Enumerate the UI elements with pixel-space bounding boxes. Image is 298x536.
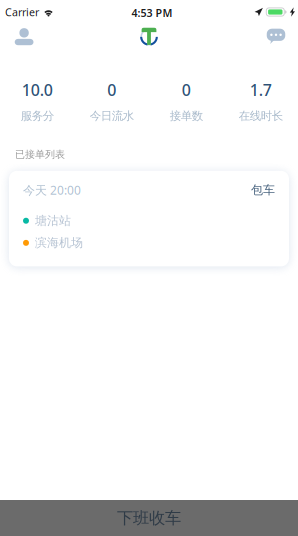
staticText: 1.7 <box>250 79 272 101</box>
staticText: 包车 <box>251 182 275 197</box>
staticText: 今日流水 <box>90 109 134 123</box>
staticText: 0 <box>107 79 116 101</box>
staticText: 塘沽站 <box>35 213 71 228</box>
staticText: 已接单列表 <box>15 148 65 161</box>
staticText: 接单数 <box>170 109 203 123</box>
staticText: 0 <box>182 79 191 101</box>
staticText: 下班收车 <box>117 508 181 528</box>
staticText: 服务分 <box>21 109 54 123</box>
staticText: 在线时长 <box>239 109 283 123</box>
staticText: 滨海机场 <box>35 235 83 250</box>
staticText: 10.0 <box>22 79 53 101</box>
staticText: 4:53 PM <box>131 5 172 20</box>
staticText: 今天 20:00 <box>23 182 81 198</box>
button[interactable]: 今天 20:00 <box>9 171 289 266</box>
button[interactable]: Profile <box>2 22 46 52</box>
button[interactable]: Messages <box>254 22 298 52</box>
button[interactable]: 下班收车 <box>0 500 298 536</box>
staticText: Carrier <box>5 5 39 19</box>
